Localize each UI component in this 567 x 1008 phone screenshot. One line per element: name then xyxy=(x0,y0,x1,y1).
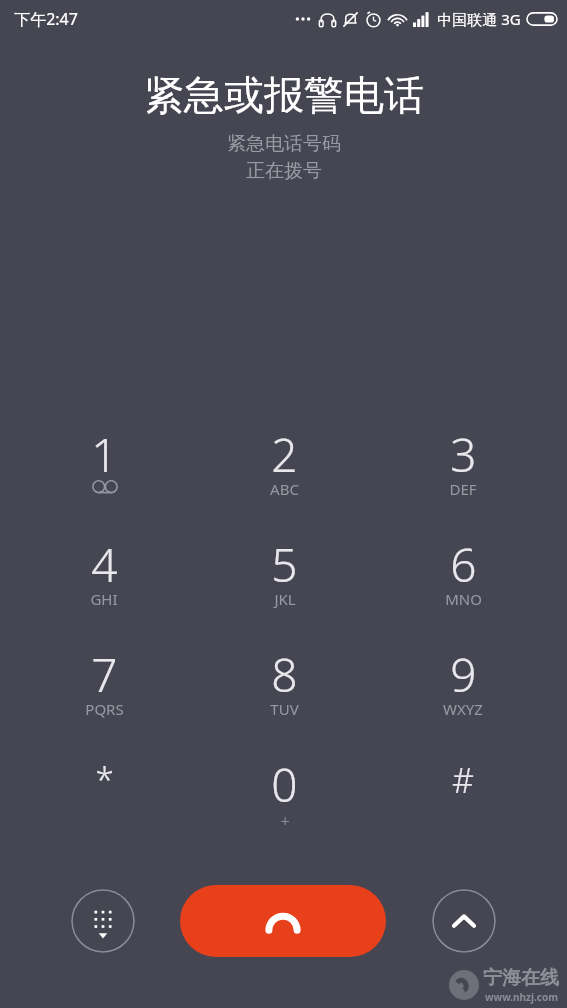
button[interactable]: 7 xyxy=(29,637,179,747)
staticText: 8 xyxy=(271,643,298,697)
button[interactable]: 9 xyxy=(388,637,538,747)
staticText: 中国联通 3G xyxy=(437,9,521,29)
button[interactable]: 8 xyxy=(209,637,359,747)
staticText: 宁海在线 xyxy=(483,966,559,990)
staticText: 正在拨号 xyxy=(246,159,322,183)
button[interactable]: 2 xyxy=(209,417,359,527)
staticText: 5 xyxy=(271,533,298,587)
staticText: ABC xyxy=(270,479,299,499)
button[interactable]: * xyxy=(29,747,179,857)
staticText: 紧急或报警电话 xyxy=(144,70,424,120)
staticText: 7 xyxy=(91,643,118,697)
button[interactable]: Expand xyxy=(432,889,496,953)
button[interactable]: 6 xyxy=(388,527,538,637)
staticText: 下午2:47 xyxy=(14,8,78,30)
staticText: JKL xyxy=(274,589,296,609)
button[interactable]: End call xyxy=(180,885,386,957)
staticText: 6 xyxy=(450,533,477,587)
staticText: GHI xyxy=(90,589,118,609)
button[interactable]: # xyxy=(388,747,538,857)
staticText: 0 xyxy=(271,753,298,807)
staticText: 2 xyxy=(271,423,298,477)
button[interactable]: 1 xyxy=(29,417,179,527)
staticText: + xyxy=(280,809,290,832)
staticText: DEF xyxy=(449,479,477,499)
staticText: * xyxy=(95,757,114,803)
staticText: TUV xyxy=(270,699,299,719)
button[interactable]: 4 xyxy=(29,527,179,637)
staticText: 紧急电话号码 xyxy=(227,132,341,156)
staticText: 3 xyxy=(450,423,477,477)
button[interactable]: 3 xyxy=(388,417,538,527)
staticText: MNO xyxy=(445,589,482,609)
button[interactable]: 0 xyxy=(209,747,359,857)
staticText: WXYZ xyxy=(443,699,483,719)
button[interactable]: 5 xyxy=(209,527,359,637)
staticText: # xyxy=(452,757,474,803)
staticText: 9 xyxy=(450,643,477,697)
staticText: www.nhzj.com xyxy=(485,990,558,1004)
staticText: 4 xyxy=(91,533,118,587)
staticText: PQRS xyxy=(85,699,124,719)
button[interactable]: Hide keypad xyxy=(71,889,135,953)
staticText: 1 xyxy=(91,423,118,477)
